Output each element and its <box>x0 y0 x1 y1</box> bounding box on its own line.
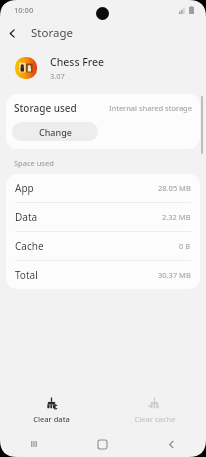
staticText: Storage used <box>14 101 77 115</box>
button[interactable]: Home <box>68 431 137 457</box>
staticText: Total <box>15 268 38 282</box>
button[interactable]: Data <box>6 203 200 232</box>
button[interactable]: Back <box>137 431 206 457</box>
button[interactable]: Cache <box>6 232 200 261</box>
staticText: 2.32 MB <box>162 212 191 222</box>
button[interactable]: Chess Free <box>0 46 206 90</box>
button[interactable]: Clear cache <box>103 389 206 431</box>
button[interactable]: Change <box>12 122 98 141</box>
staticText: 28.05 MB <box>158 183 191 193</box>
staticText: Data <box>15 210 38 224</box>
button[interactable]: Recents <box>0 431 68 457</box>
button[interactable]: Clear data <box>0 389 103 431</box>
button[interactable]: App <box>6 174 200 203</box>
button[interactable]: Back <box>0 21 24 45</box>
staticText: Clear data <box>33 414 70 424</box>
staticText: 0 B <box>179 241 191 251</box>
staticText: 10:00 <box>14 5 34 15</box>
staticText: 3.07 <box>50 71 65 81</box>
staticText: App <box>15 181 34 195</box>
staticText: Cache <box>15 239 44 253</box>
staticText: 30.37 MB <box>158 270 191 280</box>
staticText: Space used <box>14 158 54 168</box>
staticText: Chess Free <box>50 55 105 69</box>
staticText: Change <box>39 126 72 138</box>
button[interactable]: Total <box>6 261 200 289</box>
staticText: Clear cache <box>134 414 176 424</box>
staticText: Internal shared storage <box>109 103 192 113</box>
staticText: Storage <box>31 25 73 41</box>
